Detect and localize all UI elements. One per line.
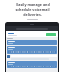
button[interactable]: [7, 61, 57, 68]
button[interactable]: Schedule delivery: [46, 33, 56, 36]
button[interactable]: [7, 40, 57, 45]
staticText: schedule voicemail: [15, 7, 50, 12]
button[interactable]: [7, 46, 57, 54]
button[interactable]: [7, 55, 57, 60]
staticText: deliveries.: [23, 12, 42, 17]
button[interactable]: [8, 33, 46, 36]
staticText: Easily manage and: [16, 2, 50, 7]
